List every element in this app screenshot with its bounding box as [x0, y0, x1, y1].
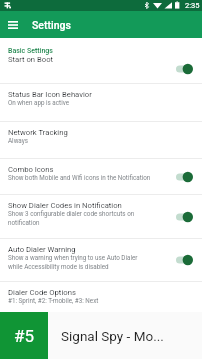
staticText: Always: [8, 137, 28, 144]
button[interactable]: Dialer Code Options: [0, 282, 202, 313]
staticText: Dialer Code Options: [8, 288, 76, 297]
staticText: Start on Boot: [8, 55, 54, 64]
staticText: Show 3 configurable dialer code shortcut…: [8, 210, 135, 226]
staticText: On when app is active: [8, 99, 70, 106]
staticText: Network Tracking: [8, 128, 68, 137]
button[interactable]: Start on Boot: [0, 55, 202, 83]
button[interactable]: Auto Dialer Warning: [0, 239, 202, 281]
staticText: Basic Settings: [8, 47, 53, 55]
button[interactable]: Show Dialer Codes in Notification: [0, 195, 202, 238]
button[interactable]: Status Bar Icon Behavior: [0, 84, 202, 121]
staticText: 2:35: [185, 1, 200, 10]
staticText: #1: Sprint, #2: T-mobile, #3: Next: [8, 297, 99, 304]
staticText: Signal Spy - Mo...: [61, 328, 164, 344]
button[interactable]: Network Tracking: [0, 122, 202, 158]
staticText: Auto Dialer Warning: [8, 245, 76, 254]
staticText: Combo Icons: [8, 165, 54, 174]
button[interactable]: Combo Icons: [0, 159, 202, 194]
staticText: Show a warning when trying to use Auto D…: [8, 254, 138, 270]
staticText: Show both Mobile and Wifi icons in the N…: [8, 174, 151, 181]
staticText: #5: [14, 326, 35, 346]
staticText: Settings: [32, 19, 71, 31]
staticText: Status Bar Icon Behavior: [8, 90, 92, 99]
button[interactable]: Open navigation drawer: [0, 11, 25, 38]
staticText: Show Dialer Codes in Notification: [8, 201, 122, 210]
